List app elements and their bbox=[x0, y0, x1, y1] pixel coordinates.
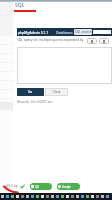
staticText: SQL search bbox=[75, 30, 92, 34]
staticText: Clear bbox=[53, 90, 61, 94]
button[interactable] bbox=[17, 47, 112, 84]
button[interactable]: Databases bbox=[56, 30, 73, 35]
staticText: ...-v4.9.2.zip bbox=[1, 184, 18, 188]
button[interactable]: Clear query bbox=[99, 38, 109, 44]
button[interactable]: Google welcandes bbox=[58, 183, 79, 190]
button[interactable] bbox=[0, 54, 13, 63]
button[interactable]: Go bbox=[17, 88, 44, 96]
button[interactable]: Format query bbox=[87, 38, 97, 44]
staticText: 4,8 welcandes bbox=[35, 185, 51, 189]
button[interactable] bbox=[0, 72, 13, 81]
staticText: SQL bbox=[15, 2, 25, 9]
staticText: Go bbox=[28, 90, 33, 94]
button[interactable] bbox=[0, 36, 13, 45]
staticText: Google welcandes bbox=[62, 185, 79, 189]
button[interactable] bbox=[0, 99, 13, 108]
button[interactable]: SQL search bbox=[74, 29, 92, 35]
button[interactable] bbox=[0, 63, 13, 72]
button[interactable]: 4,8 welcandes bbox=[31, 183, 51, 190]
staticText: SQL query (on multiple queries separated… bbox=[17, 38, 84, 42]
button[interactable] bbox=[0, 81, 13, 90]
staticText: phpMyAdmin 5.1.1 bbox=[18, 30, 49, 35]
staticText: Records: 0 in 0.0001 sec bbox=[17, 100, 53, 104]
button[interactable] bbox=[0, 90, 13, 99]
button[interactable] bbox=[0, 45, 13, 54]
button[interactable] bbox=[93, 30, 111, 34]
button[interactable]: Clear bbox=[45, 88, 68, 96]
